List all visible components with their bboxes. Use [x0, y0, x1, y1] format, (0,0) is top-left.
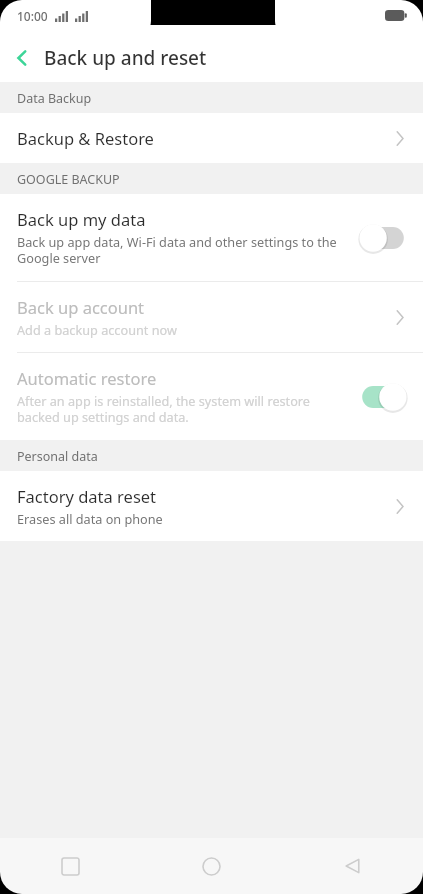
staticText: Back up account: [17, 296, 145, 318]
button[interactable]: Factory data reset: [0, 471, 423, 541]
button[interactable]: Back: [0, 36, 44, 80]
button[interactable]: Back up account: [0, 282, 423, 352]
staticText: Back up my data: [17, 208, 146, 230]
staticText: Backup & Restore: [17, 127, 154, 149]
staticText: Factory data reset: [17, 485, 157, 507]
button[interactable]: Home: [141, 838, 282, 894]
button[interactable]: Toggle off: [357, 223, 409, 253]
staticText: After an app is reinstalled, the system …: [17, 392, 347, 426]
button[interactable]: Toggle on: [357, 382, 409, 412]
staticText: Add a backup account now: [17, 321, 177, 338]
staticText: 10:00: [17, 8, 48, 24]
staticText: Back up app data, Wi-Fi data and other s…: [17, 233, 347, 267]
button[interactable]: Back up my data: [0, 194, 423, 281]
button[interactable]: Recent apps: [0, 838, 141, 894]
staticText: Automatic restore: [17, 367, 157, 389]
staticText: Data Backup: [17, 90, 92, 107]
staticText: GOOGLE BACKUP: [17, 171, 120, 188]
staticText: Personal data: [17, 448, 98, 465]
staticText: Back up and reset: [44, 45, 207, 71]
button[interactable]: Automatic restore: [0, 353, 423, 440]
staticText: Erases all data on phone: [17, 510, 163, 527]
button[interactable]: Backup & Restore: [0, 113, 423, 163]
button[interactable]: Back: [282, 838, 423, 894]
